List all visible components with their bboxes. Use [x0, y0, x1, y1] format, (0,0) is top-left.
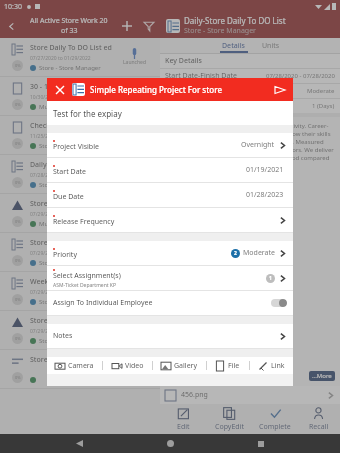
- button[interactable]: Close: [52, 82, 68, 98]
- button[interactable]: 0%: [0, 194, 160, 232]
- staticText: CopyEdit: [215, 422, 244, 431]
- staticText: Camera: [68, 361, 94, 371]
- button[interactable]: Recall: [298, 404, 340, 434]
- staticText: 07/29/2...: [30, 211, 53, 218]
- staticText: Start Date-Finish Date: [165, 71, 237, 81]
- button[interactable]: Send: [272, 82, 288, 98]
- button[interactable]: Release Frequency: [47, 208, 293, 232]
- button[interactable]: 0%: [0, 311, 160, 349]
- button[interactable]: Gallery: [157, 359, 202, 373]
- staticText: Store check: [30, 355, 69, 365]
- button[interactable]: Assign To Individual Employee: [47, 291, 293, 315]
- staticText: 2: [234, 250, 237, 257]
- button[interactable]: Priority: [47, 241, 293, 265]
- staticText: Complete: [259, 422, 291, 431]
- button[interactable]: 0%: [0, 38, 160, 76]
- button[interactable]: Filter: [138, 15, 160, 37]
- staticText: File: [228, 361, 240, 371]
- staticText: 07/28/2...: [30, 172, 53, 179]
- button[interactable]: 0%: [0, 272, 160, 310]
- staticText: Store -: [39, 181, 58, 189]
- staticText: Store -: [39, 259, 58, 267]
- staticText: Moderate: [243, 248, 275, 258]
- staticText: Start Date: [53, 167, 87, 177]
- staticText: Simple Repeating Project For store: [90, 84, 272, 95]
- button[interactable]: Video: [108, 359, 148, 373]
- button[interactable]: Back: [67, 434, 91, 453]
- staticText: Weekly: [30, 277, 54, 287]
- staticText: Store - Store Manager: [39, 64, 101, 72]
- staticText: Store Daily To DO List ed: [30, 43, 112, 53]
- staticText: 30 - 11: [30, 82, 52, 92]
- staticText: Test for the expiay: [53, 108, 122, 119]
- staticText: 1 (Days): [312, 102, 335, 110]
- staticText: ASM-Ticket Department KP: [53, 282, 116, 289]
- staticText: Video: [125, 361, 144, 371]
- staticText: Check: [30, 121, 51, 131]
- staticText: Store - Store Manager: [184, 26, 256, 36]
- staticText: Project Visible: [53, 142, 99, 152]
- button[interactable]: Units: [262, 41, 280, 53]
- staticText: 07/29/2020 to 07/30/2020: [30, 328, 91, 335]
- staticText: 0%: [15, 258, 21, 263]
- button[interactable]: 0%: [0, 233, 160, 271]
- staticText: 01/19/2021: [246, 165, 284, 175]
- staticText: 0%: [15, 102, 21, 107]
- button[interactable]: Notes: [47, 324, 293, 348]
- staticText: 07/27/2020 to 01/29/2022: [30, 55, 91, 62]
- staticText: Multiple: [39, 103, 63, 111]
- staticText: Priority: [53, 250, 77, 260]
- button[interactable]: 0%: [0, 155, 160, 193]
- staticText: 456.png: [181, 390, 208, 400]
- staticText: Units: [262, 41, 280, 51]
- button[interactable]: Select Assignment(s): [47, 266, 293, 290]
- staticText: 0%: [15, 336, 21, 341]
- button[interactable]: Project Visible: [47, 133, 293, 157]
- staticText: Store t: [30, 199, 53, 209]
- staticText: 07/29/2...: [30, 250, 53, 257]
- staticText: 10:30: [4, 2, 22, 12]
- button[interactable]: Test for the expiay: [47, 101, 293, 125]
- button[interactable]: ...More: [309, 371, 335, 381]
- staticText: Select Assignment(s): [53, 271, 121, 281]
- staticText: All Active Store Work 20: [30, 16, 108, 26]
- button[interactable]: Recents: [249, 434, 273, 453]
- staticText: Store -: [39, 142, 58, 150]
- staticText: 10/30/2...: [30, 94, 53, 101]
- staticText: Key Details: [165, 56, 202, 66]
- button[interactable]: Start Date: [47, 158, 293, 182]
- staticText: of 33: [61, 26, 78, 36]
- button[interactable]: 0%: [0, 116, 160, 154]
- button[interactable]: File: [211, 359, 244, 373]
- button[interactable]: Back: [0, 15, 22, 37]
- staticText: 1: [269, 275, 272, 282]
- staticText: 0%: [15, 297, 21, 302]
- staticText: Store W: [30, 238, 57, 248]
- staticText: Assign To Individual Employee: [53, 298, 153, 308]
- staticText: ...More: [312, 372, 332, 380]
- button[interactable]: Add: [116, 15, 138, 37]
- button[interactable]: Details: [220, 41, 248, 53]
- staticText: Store - Team Member: [39, 337, 100, 345]
- button[interactable]: 456.png: [160, 386, 340, 404]
- staticText: Recall: [309, 422, 329, 431]
- staticText: Launched: [123, 59, 146, 66]
- staticText: Gallery: [174, 361, 198, 371]
- button[interactable]: Due Date: [47, 183, 293, 207]
- staticText: Daily-Store Daily To DO List: [184, 15, 286, 26]
- button[interactable]: Complete: [252, 404, 298, 434]
- staticText: 11/25/2...: [30, 133, 53, 140]
- staticText: Release Frequency: [53, 217, 115, 227]
- button[interactable]: Edit: [160, 404, 206, 434]
- button[interactable]: 0%: [0, 350, 160, 388]
- button[interactable]: CopyEdit: [206, 404, 252, 434]
- staticText: 0%: [15, 63, 21, 68]
- button[interactable]: Link: [254, 359, 289, 373]
- button[interactable]: 0%: [0, 77, 160, 115]
- button[interactable]: Home: [158, 434, 182, 453]
- button[interactable]: Camera: [51, 359, 98, 373]
- staticText: 0%: [15, 375, 21, 380]
- staticText: Overnight: [241, 140, 275, 150]
